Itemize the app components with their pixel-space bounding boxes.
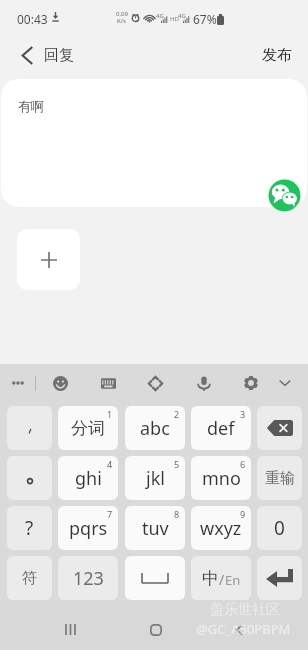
button[interactable]: Space [125,556,185,600]
staticText: 5 [174,458,180,470]
staticText: 发布 [262,46,292,65]
staticText: 7 [107,508,113,520]
staticText: / [219,570,225,589]
button[interactable]: Delete [257,406,302,450]
staticText: @GC_A50PBPM [196,620,291,638]
button[interactable]: 符 [7,556,52,600]
button[interactable]: Settings [238,364,264,402]
button[interactable]: wxyz [191,506,251,550]
staticText: tuv [142,516,169,541]
button[interactable]: Hide keyboard [272,364,298,402]
button[interactable]: 0 [257,506,302,550]
button[interactable]: Keyboard layout [96,364,121,402]
staticText: 4G [156,12,164,20]
button[interactable]: 中 [191,556,251,600]
button[interactable]: jkl [125,456,185,500]
button[interactable]: def [191,406,251,450]
staticText: 00:43 [17,11,48,27]
button[interactable]: Emoji [48,364,73,402]
staticText: 重输 [265,469,295,488]
other: Back [22,47,32,64]
staticText: 分词 [71,418,105,439]
button[interactable]: Voice input [191,364,217,402]
button[interactable]: More [7,364,28,402]
staticText: mno [202,466,241,491]
button[interactable] [7,456,52,500]
staticText: 3 [240,408,246,420]
staticText: 中 [202,568,219,589]
staticText: HD [170,15,179,23]
staticText: abc [140,416,170,441]
button[interactable]: Back [224,615,253,644]
button[interactable]: Enter [257,556,302,600]
staticText: 盖乐世社区 [210,601,280,619]
staticText: 0 [274,515,285,541]
staticText: 有啊 [18,98,44,114]
button[interactable] [7,406,52,450]
staticText: K/s [117,17,126,25]
staticText: def [207,416,235,441]
staticText: pqrs [69,516,108,541]
button[interactable]: ghi [58,456,118,500]
button[interactable]: 重输 [257,456,302,500]
staticText: jkl [146,466,165,491]
staticText: 4 [107,458,113,470]
staticText: 1 [107,408,113,420]
button[interactable]: mno [191,456,251,500]
button[interactable]: 123 [58,556,118,600]
staticText: 6 [240,458,246,470]
staticText: ? [25,515,34,541]
button[interactable]: Back [14,32,84,79]
staticText: 123 [73,566,104,591]
button[interactable]: tuv [125,506,185,550]
staticText: En [225,571,241,589]
button[interactable]: pqrs [58,506,118,550]
button[interactable]: 分词 [58,406,118,450]
staticText: 0.09 [116,10,128,18]
staticText: 2 [174,408,180,420]
staticText: 9 [240,508,246,520]
staticText: 回复 [44,46,74,65]
button[interactable]: 发布 [244,36,308,75]
button[interactable]: Move cursor [143,364,168,402]
button[interactable]: Add image [17,229,80,290]
staticText: wxyz [200,516,242,541]
staticText: 4G [178,12,186,20]
staticText: 67% [193,11,217,27]
button[interactable]: ? [7,506,52,550]
button[interactable]: abc [125,406,185,450]
button[interactable]: WeChat [267,178,302,213]
staticText: ghi [75,466,102,491]
button[interactable]: Recents [56,615,85,644]
staticText: 8 [174,508,180,520]
button[interactable]: Home [141,615,170,644]
staticText: 符 [22,569,37,588]
